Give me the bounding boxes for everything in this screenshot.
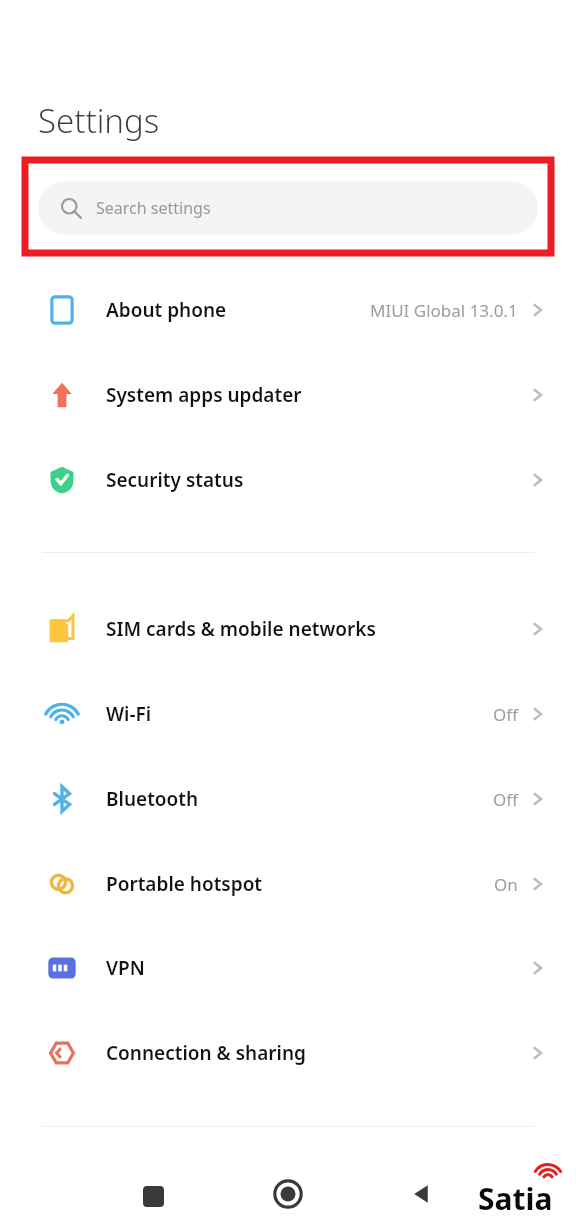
staticText: System apps updater [106, 382, 302, 408]
button[interactable]: Home [258, 1164, 318, 1224]
staticText: About phone [106, 297, 227, 323]
staticText: On [494, 873, 518, 896]
staticText: MIUI Global 13.0.1 [370, 299, 518, 322]
staticText: Settings [38, 98, 160, 143]
staticText: Portable hotspot [106, 871, 263, 897]
button[interactable]: Search settings [38, 181, 538, 235]
button[interactable]: Bluetooth [0, 757, 576, 841]
button[interactable]: About phone [0, 268, 576, 352]
staticText: Off [493, 703, 518, 726]
button[interactable]: SIM cards & mobile networks [0, 587, 576, 671]
button[interactable]: Wi-Fi [0, 672, 576, 756]
button[interactable]: Back [392, 1164, 452, 1224]
staticText: Connection & sharing [106, 1040, 306, 1066]
staticText: SIM cards & mobile networks [106, 616, 376, 642]
staticText: Satia [478, 1178, 553, 1219]
button[interactable]: Portable hotspot [0, 842, 576, 926]
button[interactable]: Recent apps [123, 1166, 183, 1226]
button[interactable]: Security status [0, 438, 576, 522]
staticText: Search settings [96, 197, 211, 219]
button[interactable]: System apps updater [0, 353, 576, 437]
button[interactable]: VPN [0, 926, 576, 1010]
staticText: Bluetooth [106, 786, 199, 812]
staticText: Security status [106, 467, 244, 493]
staticText: Wi-Fi [106, 701, 152, 727]
staticText: VPN [106, 955, 145, 981]
staticText: Off [493, 788, 518, 811]
button[interactable]: Connection & sharing [0, 1011, 576, 1095]
